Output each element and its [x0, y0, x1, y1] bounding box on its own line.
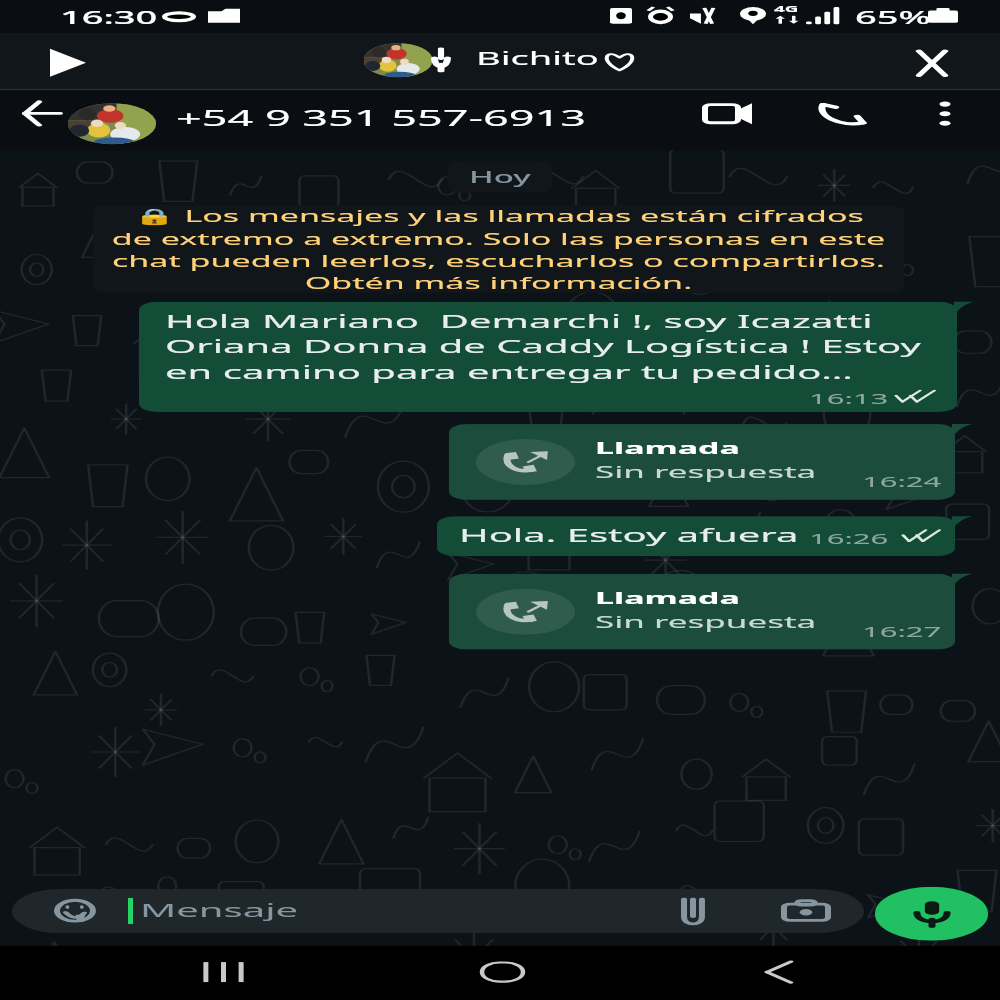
button[interactable]: Call [819, 102, 868, 125]
staticText: Hola Mariano Demarchi !, soy Icazatti Or… [165, 308, 955, 384]
button[interactable]: Video call [702, 103, 752, 124]
button[interactable]: Mensaje [12, 889, 864, 933]
staticText: Llamada [595, 587, 740, 608]
button[interactable]: Close [917, 50, 947, 76]
staticText: Bichito [476, 46, 599, 70]
staticText: Sin respuesta [595, 461, 817, 484]
staticText: 16:13 [809, 389, 889, 408]
staticText: Llamada [595, 437, 740, 458]
staticText: 16:27 [862, 622, 942, 641]
button[interactable]: Attach [677, 897, 709, 925]
staticText: 16:30 [60, 5, 158, 29]
button[interactable]: Back [22, 100, 60, 126]
staticText: +54 9 351 557-6913 [176, 104, 586, 133]
button[interactable]: Back [725, 953, 831, 991]
button[interactable]: Hola Mariano Demarchi !, soy Icazatti Or… [139, 302, 957, 412]
staticText: 16:24 [862, 472, 942, 491]
button[interactable]: Hoy [448, 161, 552, 193]
button[interactable]: More options [934, 102, 956, 125]
staticText: Hoy [469, 166, 531, 187]
button[interactable]: Play [50, 49, 86, 77]
button[interactable]: Home [449, 953, 555, 991]
button[interactable]: Camera [782, 900, 830, 922]
button[interactable]: Hola. Estoy afuera [437, 516, 955, 556]
button[interactable]: Llamada [449, 574, 955, 650]
button[interactable]: 🔒 Los mensajes y las llamadas están cifr… [93, 205, 904, 293]
staticText: 65% [855, 5, 931, 29]
button[interactable]: Llamada [449, 424, 955, 500]
button[interactable]: Recents [170, 953, 276, 991]
staticText: 🔒 Los mensajes y las llamadas están cifr… [95, 205, 902, 293]
staticText: 4G [774, 3, 799, 15]
staticText: Hola. Estoy afuera [459, 522, 799, 547]
button[interactable]: Record voice message [875, 887, 988, 941]
staticText: 16:26 [809, 528, 889, 548]
staticText: Mensaje [140, 897, 299, 922]
staticText: Sin respuesta [595, 611, 817, 633]
